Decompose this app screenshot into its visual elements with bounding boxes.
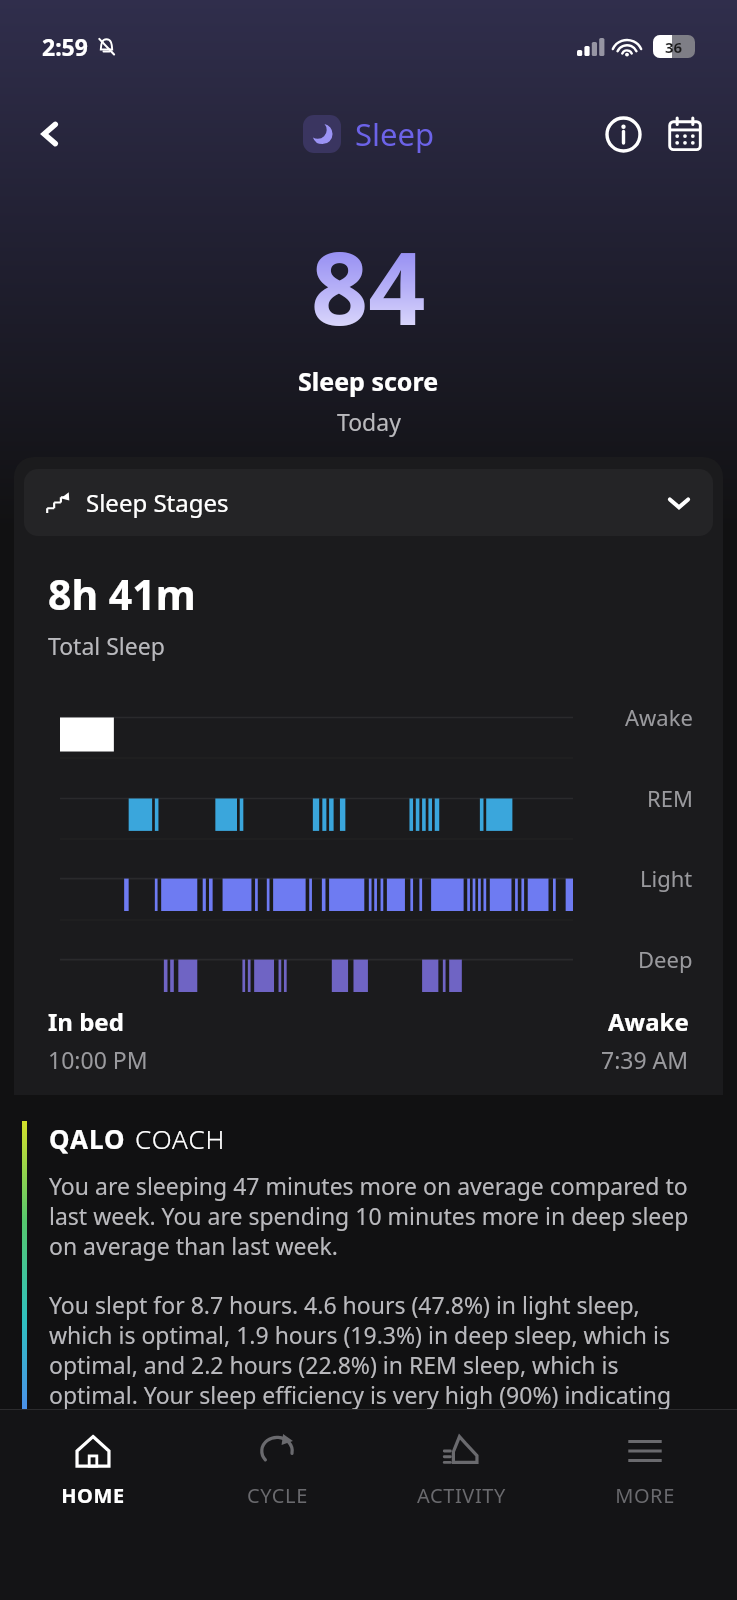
staticText: You slept for 8.7 hours. 4.6 hours (47.8… (49, 1289, 709, 1440)
button[interactable]: Info (599, 110, 647, 158)
button[interactable]: Sleep Stages (46, 486, 691, 519)
staticText: 7:39 AM (601, 1044, 689, 1075)
staticText: Awake (625, 702, 693, 732)
staticText: Sleep score (298, 364, 439, 398)
staticText: Deep (638, 944, 693, 974)
button[interactable]: Calendar (661, 110, 709, 158)
staticText: Total Sleep (48, 630, 165, 661)
staticText: Today (337, 406, 401, 437)
button[interactable]: ACTIVITY (369, 1410, 553, 1600)
staticText: In bed (48, 1005, 124, 1038)
button[interactable]: Sleep (303, 113, 435, 155)
staticText: 8h 41m (48, 566, 196, 622)
staticText: QALO (49, 1121, 126, 1156)
staticText: Sleep (355, 113, 435, 155)
staticText: MORE (615, 1482, 675, 1509)
button[interactable]: HOME (0, 1410, 185, 1600)
staticText: REM (647, 783, 693, 813)
staticText: 10:00 PM (48, 1044, 148, 1075)
staticText: 84 (311, 218, 426, 354)
staticText: 36 (665, 37, 683, 57)
staticText: 2:59 (42, 31, 88, 62)
staticText: Light (640, 863, 693, 893)
button[interactable]: MORE (553, 1410, 737, 1600)
staticText: You are sleeping 47 minutes more on aver… (49, 1170, 709, 1261)
staticText: Awake (608, 1005, 689, 1038)
staticText: CYCLE (247, 1482, 308, 1509)
staticText: COACH (135, 1121, 226, 1156)
button[interactable]: CYCLE (185, 1410, 369, 1600)
staticText: Sleep Stages (86, 486, 229, 519)
staticText: ACTIVITY (417, 1482, 506, 1509)
staticText: HOME (61, 1482, 125, 1509)
button[interactable]: Back (24, 108, 76, 160)
